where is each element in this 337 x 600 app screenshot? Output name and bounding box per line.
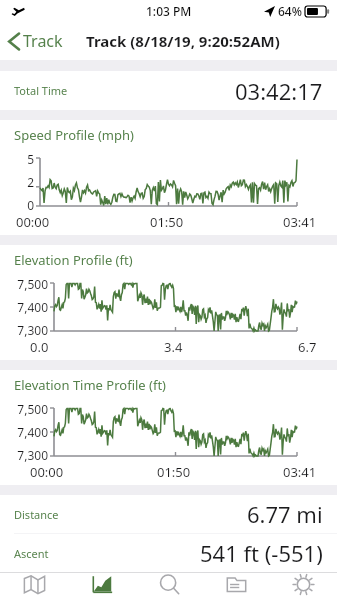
staticText: 2 xyxy=(27,174,34,190)
staticText: 6.7 xyxy=(298,338,317,356)
staticText: 01:50 xyxy=(157,463,191,481)
staticText: 03:41 xyxy=(283,463,317,481)
staticText: 5 xyxy=(27,151,34,167)
staticText: Track xyxy=(23,30,63,52)
button[interactable]: Saved xyxy=(203,573,270,600)
staticText: 03:41 xyxy=(283,213,317,231)
staticText: 7,300 xyxy=(17,322,48,338)
staticText: 3.4 xyxy=(164,338,183,356)
staticText: 00:00 xyxy=(30,463,64,481)
staticText: 0.0 xyxy=(30,338,49,356)
button[interactable]: Discover xyxy=(136,573,203,600)
staticText: 7,400 xyxy=(17,299,48,315)
staticText: 6.77 mi xyxy=(247,499,323,529)
button[interactable]: Ascent xyxy=(0,534,337,572)
staticText: 00:00 xyxy=(16,213,50,231)
button[interactable]: Speed Profile (mph) xyxy=(0,120,337,235)
button[interactable]: Elevation Time Profile (ft) xyxy=(0,370,337,485)
staticText: 541 ft (-551) xyxy=(200,538,323,568)
button[interactable]: Trip xyxy=(68,573,136,600)
staticText: 01:50 xyxy=(150,213,184,231)
staticText: 0 xyxy=(27,197,34,213)
staticText: Speed Profile (mph) xyxy=(14,126,134,144)
button[interactable]: Elevation Profile (ft) xyxy=(0,245,337,360)
button[interactable]: Distance xyxy=(0,495,337,533)
staticText: 1:03 PM xyxy=(146,3,192,19)
staticText: Distance xyxy=(14,507,59,522)
staticText: Total Time xyxy=(14,83,68,98)
button[interactable]: Track xyxy=(8,30,67,52)
staticText: 03:42:17 xyxy=(235,76,323,106)
button[interactable]: Settings xyxy=(270,573,337,600)
staticText: 7,300 xyxy=(17,447,48,463)
button[interactable]: Total Time xyxy=(0,71,337,110)
staticText: 7,500 xyxy=(17,276,48,292)
staticText: Ascent xyxy=(14,546,49,561)
staticText: 7,500 xyxy=(17,401,48,417)
staticText: 7,400 xyxy=(17,424,48,440)
button[interactable]: Map xyxy=(0,573,68,600)
staticText: Elevation Time Profile (ft) xyxy=(14,376,167,394)
staticText: Elevation Profile (ft) xyxy=(14,251,133,269)
staticText: 64% xyxy=(278,3,302,19)
staticText: Track (8/18/19, 9:20:52AM) xyxy=(86,31,280,51)
